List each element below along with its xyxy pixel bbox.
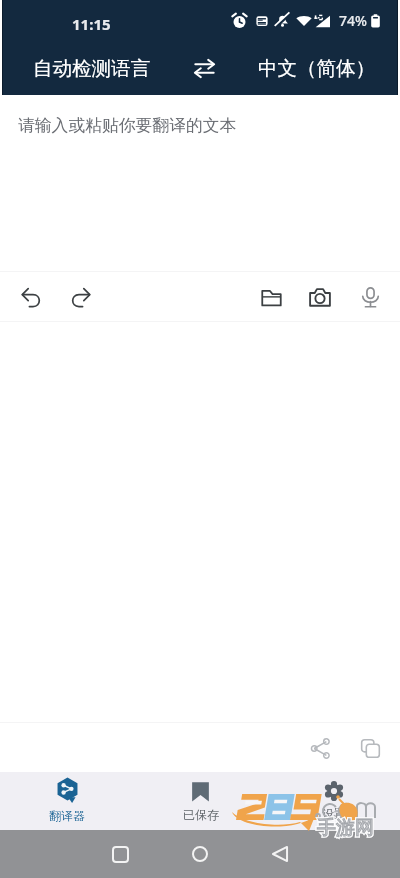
- staticText: 自动检测语言: [33, 56, 150, 81]
- button[interactable]: Voice input: [350, 277, 390, 317]
- button[interactable]: Home: [180, 834, 220, 874]
- staticText: 翻译器: [49, 808, 85, 823]
- button[interactable]: Copy: [350, 728, 390, 768]
- staticText: 请输入或粘贴你要翻译的文本: [18, 115, 237, 136]
- button[interactable]: 翻译器: [0, 772, 134, 830]
- staticText: 手游网: [317, 816, 374, 840]
- staticText: 设置: [322, 806, 346, 821]
- button[interactable]: 设置: [267, 772, 400, 830]
- staticText: 11:15: [72, 14, 111, 34]
- staticText: 74%: [339, 11, 367, 30]
- button[interactable]: 自动检测语言: [3, 42, 180, 95]
- staticText: 已保存: [183, 807, 219, 822]
- button[interactable]: Camera: [300, 277, 340, 317]
- button[interactable]: Undo: [11, 277, 51, 317]
- button[interactable]: Swap languages: [184, 42, 224, 95]
- staticText: 中文（简体）: [258, 56, 375, 81]
- button[interactable]: Documents: [251, 277, 291, 317]
- button[interactable]: Back: [260, 834, 300, 874]
- button[interactable]: 中文（简体）: [230, 42, 400, 95]
- button[interactable]: Redo: [61, 277, 101, 317]
- button[interactable]: Share: [300, 728, 340, 768]
- staticText: 手游网: [317, 816, 374, 840]
- button[interactable]: Recents: [100, 834, 140, 874]
- button[interactable]: 已保存: [134, 772, 267, 830]
